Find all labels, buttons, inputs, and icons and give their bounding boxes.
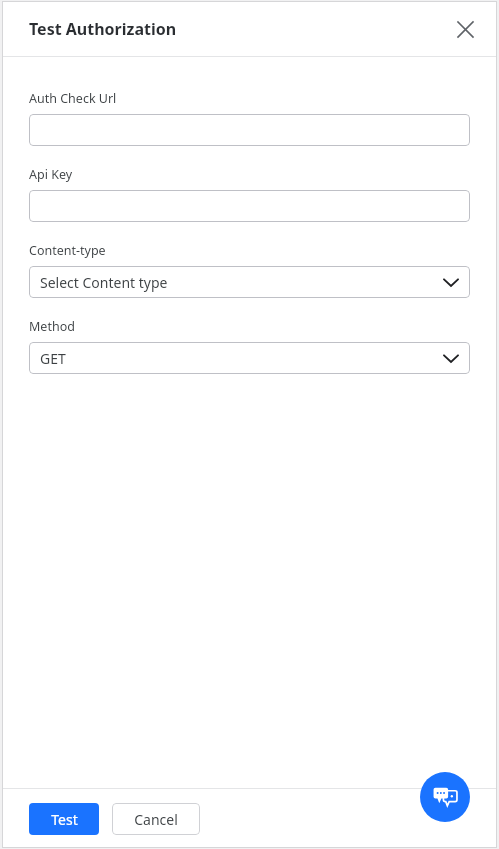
staticText: GET <box>40 349 66 368</box>
button[interactable] <box>29 190 470 222</box>
button[interactable]: Open chat support <box>420 772 470 822</box>
staticText: Api Key <box>29 166 73 183</box>
button[interactable]: Cancel <box>112 803 200 835</box>
staticText: Method <box>29 318 75 335</box>
button[interactable]: GET <box>29 342 470 374</box>
staticText: Select Content type <box>40 273 168 292</box>
button[interactable]: Close <box>451 15 479 43</box>
button[interactable]: Select Content type <box>29 266 470 298</box>
staticText: Test Authorization <box>29 18 177 40</box>
staticText: Test <box>51 810 78 829</box>
staticText: Cancel <box>134 810 178 829</box>
button[interactable]: Test <box>29 803 99 835</box>
staticText: Content-type <box>29 242 106 259</box>
button[interactable] <box>29 114 470 146</box>
staticText: Auth Check Url <box>29 90 117 107</box>
